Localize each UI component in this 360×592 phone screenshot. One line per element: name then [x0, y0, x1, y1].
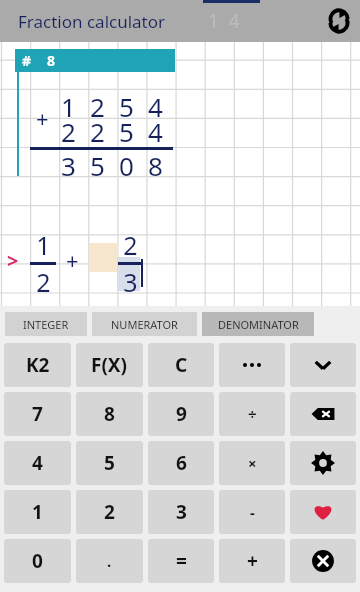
- staticText: 7: [32, 401, 43, 427]
- staticText: NUMERATOR: [111, 317, 178, 332]
- staticText: ÷: [248, 404, 257, 424]
- button[interactable]: [219, 343, 285, 387]
- button[interactable]: INTEGER: [5, 312, 87, 336]
- staticText: .: [107, 551, 112, 571]
- button[interactable]: F(X): [76, 343, 143, 387]
- button[interactable]: =: [148, 539, 214, 583]
- staticText: -: [250, 502, 255, 522]
- staticText: INTEGER: [23, 317, 69, 332]
- staticText: 8: [47, 51, 56, 70]
- button[interactable]: clear: [290, 539, 356, 583]
- button[interactable]: Refresh: [318, 0, 360, 42]
- button[interactable]: +: [219, 539, 285, 583]
- staticText: 1: [36, 228, 51, 262]
- staticText: 5: [119, 89, 134, 124]
- staticText: C: [175, 352, 188, 378]
- button[interactable]: 9: [148, 392, 214, 436]
- button[interactable]: gear: [290, 441, 356, 485]
- button[interactable]: 5: [76, 441, 143, 485]
- staticText: 2: [104, 499, 115, 525]
- button[interactable]: -: [219, 490, 285, 534]
- button[interactable]: heart: [290, 490, 356, 534]
- staticText: 4: [32, 450, 43, 476]
- staticText: +: [36, 103, 49, 133]
- staticText: #: [22, 51, 32, 70]
- button[interactable]: C: [148, 343, 214, 387]
- button[interactable]: NUMERATOR: [92, 312, 197, 336]
- staticText: 6: [176, 450, 187, 476]
- button[interactable]: 2: [76, 490, 143, 534]
- staticText: 8: [148, 148, 163, 183]
- staticText: 3: [123, 265, 138, 299]
- staticText: Fraction calculator: [18, 10, 166, 33]
- staticText: 2: [36, 265, 51, 299]
- staticText: =: [176, 548, 187, 574]
- staticText: 3: [61, 148, 76, 183]
- button[interactable]: ×: [219, 441, 285, 485]
- button[interactable]: DENOMINATOR: [202, 312, 314, 336]
- staticText: ×: [248, 453, 257, 473]
- staticText: F(X): [91, 352, 128, 378]
- staticText: 1: [61, 89, 76, 124]
- button[interactable]: .: [76, 539, 143, 583]
- staticText: 4: [148, 89, 163, 124]
- staticText: >: [7, 247, 19, 274]
- button[interactable]: 1: [4, 490, 71, 534]
- staticText: +: [66, 245, 79, 275]
- button[interactable]: K2: [4, 343, 71, 387]
- staticText: 4: [148, 114, 163, 149]
- staticText: 2: [90, 114, 105, 149]
- button[interactable]: 4: [4, 441, 71, 485]
- staticText: 2: [123, 228, 138, 262]
- button[interactable]: chevron: [290, 343, 356, 387]
- staticText: 5: [119, 114, 134, 149]
- staticText: 9: [176, 401, 187, 427]
- staticText: 8: [104, 401, 115, 427]
- staticText: 5: [104, 450, 115, 476]
- button[interactable]: ÷: [219, 392, 285, 436]
- staticText: 1: [32, 499, 43, 525]
- staticText: 2: [61, 114, 76, 149]
- button[interactable]: 8: [76, 392, 143, 436]
- button[interactable]: 0: [4, 539, 71, 583]
- staticText: +: [247, 548, 258, 574]
- staticText: 3: [176, 499, 187, 525]
- button[interactable]: 3: [148, 490, 214, 534]
- button[interactable]: backspace: [290, 392, 356, 436]
- staticText: DENOMINATOR: [218, 317, 299, 332]
- button[interactable]: 7: [4, 392, 71, 436]
- staticText: 0: [32, 548, 43, 574]
- staticText: 2: [90, 89, 105, 124]
- button[interactable]: 6: [148, 441, 214, 485]
- staticText: K2: [26, 352, 50, 378]
- staticText: 1 4: [208, 8, 240, 34]
- staticText: 0: [119, 148, 134, 183]
- staticText: 5: [90, 148, 105, 183]
